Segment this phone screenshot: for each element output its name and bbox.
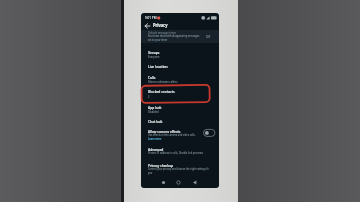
button[interactable]: Live location	[141, 63, 219, 71]
button[interactable]: Privacy checkup	[141, 162, 219, 176]
button[interactable]: Calls	[141, 74, 219, 85]
button[interactable]	[143, 22, 151, 30]
staticText: Allow camera effects	[148, 129, 181, 134]
staticText: Live location	[148, 64, 168, 69]
button[interactable]: Groups	[141, 49, 219, 60]
staticText: Chat lock	[148, 119, 163, 124]
staticText: Protect IP address in calls, Disable lin…	[148, 151, 203, 155]
staticText: Everyone	[148, 54, 160, 58]
button[interactable]	[158, 177, 169, 188]
button[interactable]: Blocked contacts	[141, 88, 219, 100]
button[interactable]: Chat lock	[141, 118, 219, 126]
staticText: App lock	[148, 105, 162, 110]
staticText: Privacy	[153, 21, 168, 28]
button[interactable]: App lock	[141, 104, 219, 115]
button[interactable]: Advanced	[141, 146, 219, 157]
button[interactable]: Default message timer	[141, 30, 219, 43]
staticText: Control your privacy and choose the righ…	[148, 167, 209, 171]
staticText: Use effects in the camera and video call…	[148, 133, 196, 137]
staticText: 9:01 PM	[145, 15, 157, 20]
staticText: Default message timer	[148, 30, 176, 34]
staticText: Off	[206, 34, 211, 39]
staticText: 2	[148, 94, 150, 98]
staticText: Start new chats with disappearing messag…	[148, 34, 199, 38]
staticText: Privacy checkup	[148, 163, 173, 168]
button[interactable]	[189, 177, 200, 188]
button[interactable]	[173, 177, 184, 188]
staticText: Disabled	[148, 109, 159, 113]
staticText: Calls	[148, 75, 155, 80]
staticText: Learn more	[148, 137, 162, 141]
button[interactable]: Allow camera effects	[141, 128, 219, 142]
staticText: set to your timer	[148, 38, 167, 42]
staticText: Groups	[148, 50, 159, 55]
staticText: Blocked contacts	[148, 89, 175, 94]
staticText: you	[148, 171, 153, 175]
staticText: Silence unknown callers	[148, 79, 178, 83]
staticText: Advanced	[148, 147, 164, 152]
